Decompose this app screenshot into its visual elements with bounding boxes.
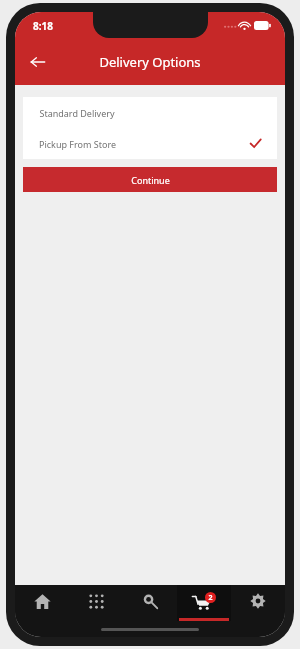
- button[interactable]: Continue: [23, 167, 277, 192]
- button[interactable]: Pickup From Store: [23, 128, 277, 159]
- staticText: Continue: [131, 174, 170, 186]
- button[interactable]: Back: [21, 45, 55, 79]
- button[interactable]: Standard Delivery: [23, 97, 277, 128]
- button[interactable]: Cart: [177, 585, 231, 621]
- staticText: 2: [208, 593, 213, 603]
- button[interactable]: Home: [15, 585, 69, 621]
- button[interactable]: Categories: [69, 585, 123, 621]
- staticText: Pickup From Store: [39, 138, 116, 150]
- staticText: 8:18: [33, 19, 53, 33]
- staticText: Standard Delivery: [39, 107, 115, 119]
- button[interactable]: Search: [123, 585, 177, 621]
- staticText: Delivery Options: [99, 53, 201, 71]
- button[interactable]: Settings: [231, 585, 285, 621]
